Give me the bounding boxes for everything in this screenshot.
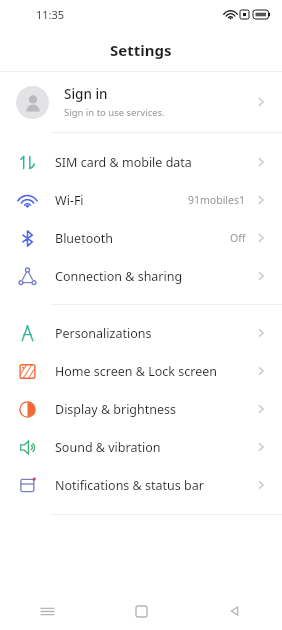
other: Open bbox=[254, 478, 268, 492]
staticText: Settings bbox=[110, 40, 172, 60]
staticText: Bluetooth bbox=[55, 230, 114, 247]
staticText: Connection & sharing bbox=[55, 268, 183, 285]
other: Open bbox=[254, 364, 268, 378]
staticText: 11:35 bbox=[36, 7, 65, 22]
staticText: Sound & vibration bbox=[55, 439, 161, 456]
other: Open bbox=[254, 193, 268, 207]
other: Open bbox=[254, 231, 268, 245]
button[interactable]: Bluetooth bbox=[0, 219, 282, 257]
staticText: Off bbox=[230, 231, 246, 245]
button[interactable]: Notifications & status bar bbox=[0, 466, 282, 504]
staticText: SIM card & mobile data bbox=[55, 154, 192, 171]
other: Open bbox=[254, 440, 268, 454]
staticText: Wi-Fi bbox=[55, 192, 84, 209]
staticText: 91mobiles1 bbox=[188, 193, 246, 207]
button[interactable]: Connection & sharing bbox=[0, 257, 282, 295]
button[interactable]: Wi-Fi bbox=[0, 181, 282, 219]
button[interactable]: SIM card & mobile data bbox=[0, 143, 282, 181]
button[interactable]: Sign in bbox=[0, 72, 282, 132]
other: Open bbox=[254, 95, 268, 109]
button[interactable]: Home bbox=[94, 592, 188, 630]
button[interactable]: Personalizations bbox=[0, 314, 282, 352]
button[interactable]: Back bbox=[188, 592, 282, 630]
other: Open bbox=[254, 155, 268, 169]
other: Open bbox=[254, 269, 268, 283]
staticText: Notifications & status bar bbox=[55, 477, 204, 494]
button[interactable]: Home screen & Lock screen bbox=[0, 352, 282, 390]
button[interactable]: Display & brightness bbox=[0, 390, 282, 428]
button[interactable]: Recents bbox=[0, 592, 94, 630]
staticText: Display & brightness bbox=[55, 401, 177, 418]
staticText: Sign in to use services. bbox=[64, 106, 165, 119]
staticText: Sign in bbox=[64, 85, 108, 103]
staticText: Home screen & Lock screen bbox=[55, 363, 217, 380]
button[interactable]: Sound & vibration bbox=[0, 428, 282, 466]
other: Open bbox=[254, 402, 268, 416]
staticText: Personalizations bbox=[55, 325, 152, 342]
other: Open bbox=[254, 326, 268, 340]
